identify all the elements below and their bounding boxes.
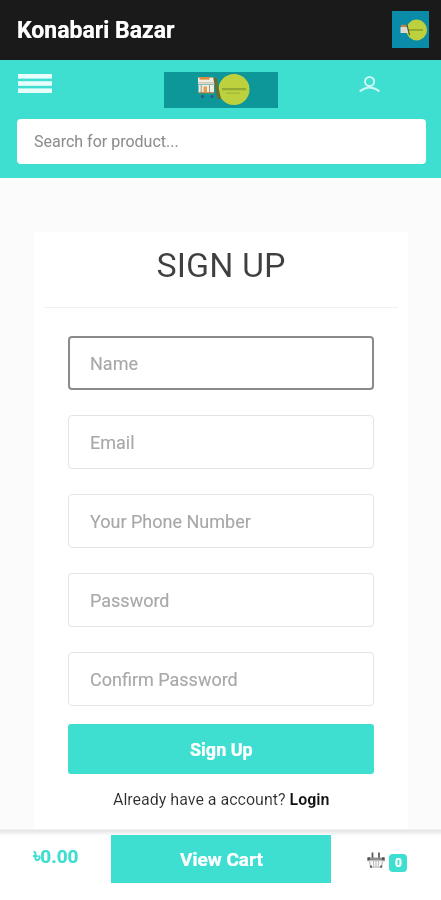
button[interactable]: Your Phone Number xyxy=(68,494,374,548)
staticText: 0 xyxy=(395,856,402,870)
staticText: Password xyxy=(90,590,170,611)
button[interactable]: Cart, 0 items xyxy=(363,851,407,875)
staticText: Sign Up xyxy=(190,739,253,760)
staticText: View Cart xyxy=(180,848,263,870)
button[interactable]: ৳0.00 xyxy=(0,829,111,883)
button[interactable]: Already have a account? Login xyxy=(34,790,408,809)
staticText: Name xyxy=(90,353,138,374)
button[interactable]: Account xyxy=(348,62,392,106)
staticText: Confirm Password xyxy=(90,669,238,690)
button[interactable]: View Cart xyxy=(111,835,331,883)
button[interactable]: Konabari Bazar icon xyxy=(392,11,429,48)
button[interactable]: Menu xyxy=(2,62,50,106)
staticText: ৳0.00 xyxy=(33,845,79,867)
staticText: Already have a account? Login xyxy=(113,790,330,809)
button[interactable]: Password xyxy=(68,573,374,627)
staticText: Your Phone Number xyxy=(90,511,251,532)
button[interactable]: Konabari Bazar logo xyxy=(164,72,278,108)
button[interactable]: Search for product... xyxy=(17,119,426,164)
staticText: Konabari Bazar xyxy=(17,17,175,44)
button[interactable]: Sign Up xyxy=(68,724,374,774)
button[interactable]: Name xyxy=(68,336,374,390)
staticText: SIGN UP xyxy=(34,245,408,285)
staticText: Email xyxy=(90,432,135,453)
staticText: Search for product... xyxy=(34,132,179,151)
button[interactable]: Email xyxy=(68,415,374,469)
button[interactable]: Confirm Password xyxy=(68,652,374,706)
